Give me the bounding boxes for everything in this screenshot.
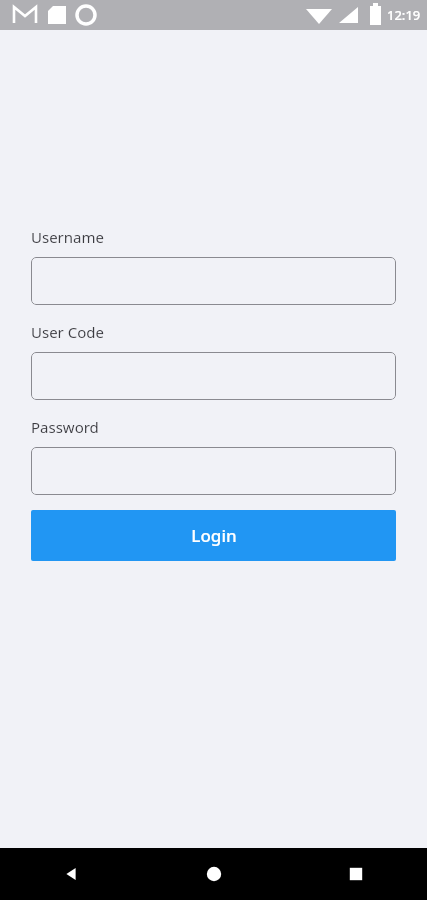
button[interactable]: Login — [31, 510, 396, 561]
staticText: User Code — [31, 322, 104, 342]
staticText: Login — [191, 524, 237, 547]
button[interactable] — [31, 257, 396, 305]
staticText: Username — [31, 227, 104, 247]
button[interactable] — [31, 352, 396, 400]
button[interactable]: Home — [143, 848, 285, 900]
staticText: Password — [31, 417, 99, 437]
button[interactable]: Back — [0, 848, 143, 900]
button[interactable] — [31, 447, 396, 495]
staticText: 12:19 — [387, 6, 421, 24]
button[interactable]: Recent apps — [285, 848, 427, 900]
